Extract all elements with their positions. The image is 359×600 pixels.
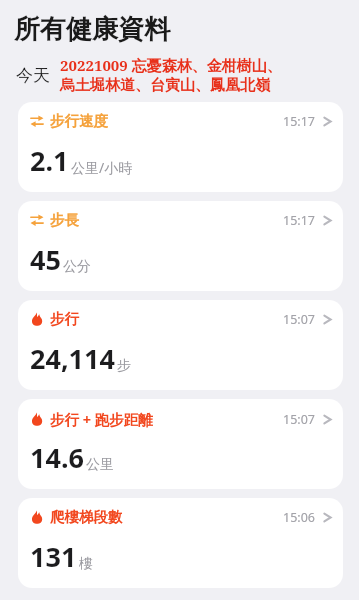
staticText: 24,114 — [30, 340, 115, 377]
button[interactable]: 步長 — [18, 201, 343, 291]
other: 顯示更多 — [323, 213, 332, 228]
staticText: 15:07 — [283, 411, 315, 428]
staticText: 樓 — [79, 555, 93, 573]
button[interactable]: 步行速度 — [18, 102, 343, 192]
staticText: 所有健康資料 — [14, 13, 170, 46]
staticText: 20221009 忘憂森林、金柑樹山、 烏土堀林道、台寅山、鳳凰北嶺 — [60, 55, 282, 95]
button[interactable]: 步行 — [18, 300, 343, 390]
staticText: 公分 — [63, 258, 91, 276]
staticText: 15:17 — [283, 212, 315, 229]
other: 顯示更多 — [323, 312, 332, 327]
staticText: 今天 — [16, 65, 50, 86]
button[interactable]: 爬樓梯段數 — [18, 498, 343, 588]
button[interactable]: 步行 + 跑步距離 — [18, 399, 343, 489]
staticText: 步 — [117, 357, 131, 375]
staticText: 14.6 — [30, 439, 84, 476]
staticText: 步長 — [50, 211, 79, 229]
staticText: 公里 — [86, 456, 114, 474]
other: 顯示更多 — [323, 114, 332, 129]
staticText: 15:17 — [283, 113, 315, 130]
staticText: 步行 + 跑步距離 — [50, 409, 153, 429]
staticText: 公里/小時 — [71, 158, 133, 177]
staticText: 爬樓梯段數 — [50, 508, 123, 526]
staticText: 步行速度 — [50, 112, 108, 130]
staticText: 步行 — [50, 310, 79, 328]
staticText: 15:06 — [283, 509, 315, 526]
other: 顯示更多 — [323, 412, 332, 427]
staticText: 2.1 — [30, 142, 69, 179]
staticText: 45 — [30, 241, 61, 278]
staticText: 15:07 — [283, 311, 315, 328]
staticText: 131 — [30, 538, 77, 575]
other: 顯示更多 — [323, 510, 332, 525]
